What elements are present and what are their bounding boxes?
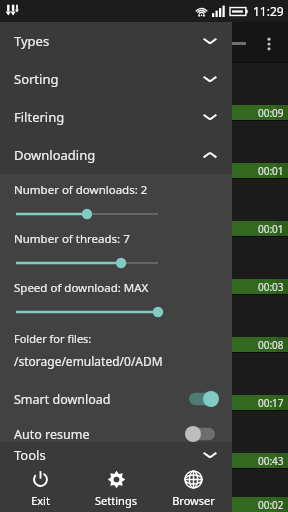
- button[interactable]: 00:03: [0, 236, 288, 294]
- button[interactable]: 00:17: [0, 352, 288, 410]
- staticText: Speed of download: MAX: [14, 280, 149, 296]
- button[interactable]: Filtering: [0, 98, 232, 136]
- staticText: 11:29: [253, 3, 284, 19]
- button[interactable]: Speed of download: MAX: [0, 280, 232, 329]
- staticText: 00:43: [258, 454, 284, 468]
- button[interactable]: Exit: [3, 465, 77, 512]
- button[interactable]: Number of threads: 7: [0, 231, 232, 280]
- button[interactable]: Auto resume: [0, 426, 232, 442]
- staticText: 00:09: [258, 106, 284, 120]
- staticText: 00:03: [258, 280, 284, 294]
- staticText: Number of downloads: 2: [14, 182, 148, 198]
- button[interactable]: Sorting: [0, 60, 232, 98]
- staticText: Filtering: [14, 108, 65, 126]
- button[interactable]: Smart download: [0, 386, 232, 412]
- button[interactable]: 00:01: [0, 178, 288, 236]
- button[interactable]: Settings: [79, 465, 153, 512]
- button[interactable]: 00:08: [0, 294, 288, 352]
- button[interactable]: 00:43: [0, 410, 288, 468]
- staticText: Exit: [31, 493, 50, 508]
- button[interactable]: More options: [258, 32, 280, 56]
- staticText: 00:17: [258, 396, 284, 410]
- staticText: 00:01: [258, 222, 284, 236]
- button[interactable]: Types: [0, 22, 232, 60]
- button[interactable]: 00:02: [0, 468, 288, 512]
- staticText: 00:02: [258, 498, 284, 512]
- button[interactable]: 00:09: [0, 62, 288, 120]
- staticText: Sorting: [14, 70, 59, 88]
- staticText: Types: [14, 32, 50, 50]
- staticText: Auto resume: [14, 426, 90, 442]
- staticText: Settings: [95, 493, 137, 508]
- staticText: 00:08: [258, 338, 284, 352]
- staticText: Tools: [14, 446, 46, 464]
- staticText: Folder for files:: [14, 331, 92, 346]
- staticText: Smart download: [14, 391, 111, 408]
- staticText: 00:01: [258, 164, 284, 178]
- button[interactable]: Browser: [156, 465, 230, 512]
- button[interactable]: Tools: [0, 442, 232, 464]
- staticText: Browser: [172, 493, 215, 508]
- button[interactable]: 00:01: [0, 120, 288, 178]
- staticText: /storage/emulated/0/ADM: [14, 353, 163, 369]
- button[interactable]: Downloading: [0, 136, 232, 174]
- staticText: Downloading: [14, 146, 96, 164]
- staticText: Number of threads: 7: [14, 231, 130, 247]
- button[interactable]: Number of downloads: 2: [0, 182, 232, 231]
